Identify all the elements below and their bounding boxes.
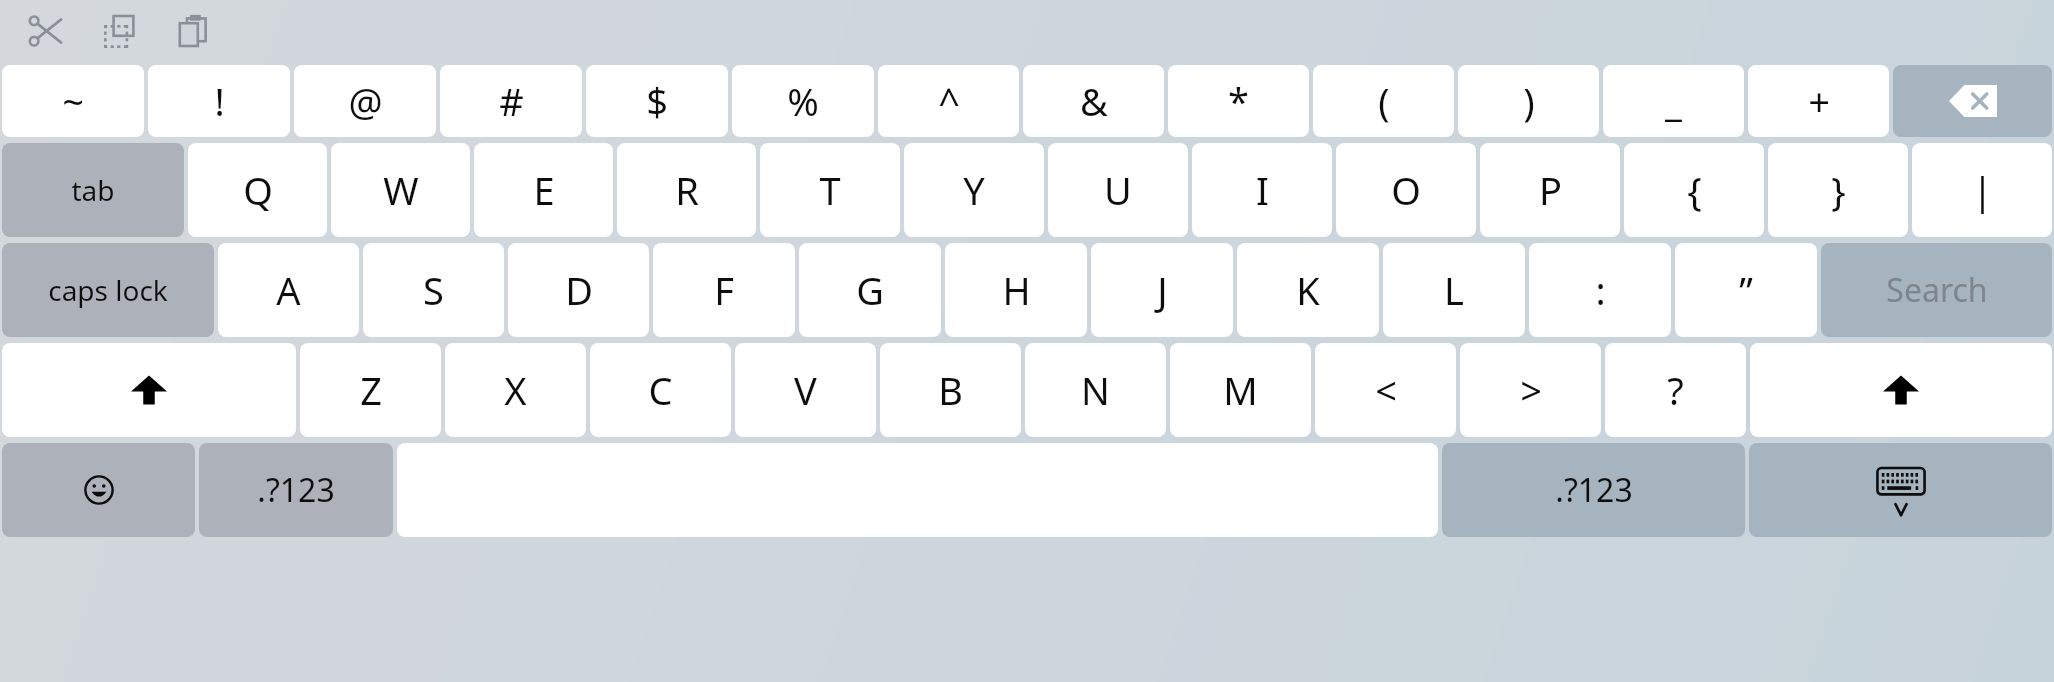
button[interactable]: A — [218, 243, 359, 337]
button[interactable]: R — [617, 143, 756, 237]
button[interactable]: U — [1048, 143, 1188, 237]
staticText: A — [276, 264, 301, 316]
button[interactable]: M — [1170, 343, 1311, 437]
button[interactable]: Z — [300, 343, 441, 437]
staticText: < — [1375, 364, 1397, 416]
button[interactable]: @ — [294, 65, 436, 137]
button[interactable]: ? — [1605, 343, 1746, 437]
staticText: + — [1808, 75, 1830, 127]
button[interactable]: Emoji — [2, 443, 195, 537]
button[interactable]: % — [732, 65, 874, 137]
button[interactable]: C — [590, 343, 731, 437]
staticText: ? — [1667, 364, 1684, 416]
staticText: Q — [243, 164, 273, 216]
staticText: Search — [1886, 268, 1988, 312]
button[interactable]: & — [1023, 65, 1164, 137]
staticText: # — [499, 75, 524, 127]
staticText: tab — [71, 171, 115, 209]
button[interactable]: I — [1192, 143, 1332, 237]
staticText: > — [1520, 364, 1542, 416]
button[interactable]: W — [331, 143, 470, 237]
button[interactable]: tab — [2, 143, 184, 237]
button[interactable]: T — [760, 143, 900, 237]
staticText: X — [504, 364, 527, 416]
staticText: @ — [348, 75, 383, 127]
staticText: ^ — [938, 75, 960, 127]
button[interactable]: ! — [148, 65, 290, 137]
staticText: R — [675, 164, 699, 216]
staticText: .?123 — [1555, 468, 1633, 512]
button[interactable]: * — [1168, 65, 1309, 137]
staticText: ( — [1378, 75, 1390, 127]
button[interactable]: K — [1237, 243, 1379, 337]
button[interactable]: Paste — [164, 6, 222, 56]
button[interactable]: _ — [1603, 65, 1744, 137]
staticText: L — [1444, 264, 1464, 316]
staticText: ” — [1739, 264, 1753, 316]
button[interactable]: O — [1336, 143, 1476, 237]
button[interactable]: ~ — [2, 65, 144, 137]
staticText: J — [1157, 264, 1168, 316]
button[interactable]: Shift — [2, 343, 296, 437]
staticText: D — [565, 264, 593, 316]
staticText: S — [423, 264, 444, 316]
button[interactable]: Hide keyboard — [1749, 443, 2052, 537]
button[interactable]: N — [1025, 343, 1166, 437]
button[interactable]: ( — [1313, 65, 1454, 137]
button[interactable]: H — [945, 243, 1087, 337]
staticText: V — [794, 364, 817, 416]
button[interactable]: : — [1529, 243, 1671, 337]
button[interactable]: E — [474, 143, 613, 237]
button[interactable]: S — [363, 243, 504, 337]
button[interactable]: ) — [1458, 65, 1599, 137]
button[interactable]: ^ — [878, 65, 1019, 137]
staticText: F — [714, 264, 734, 316]
staticText: * — [1228, 75, 1249, 127]
button[interactable]: < — [1315, 343, 1456, 437]
button[interactable]: X — [445, 343, 586, 437]
button[interactable]: # — [440, 65, 582, 137]
staticText: H — [1002, 264, 1031, 316]
button[interactable]: $ — [586, 65, 728, 137]
staticText: I — [1256, 164, 1269, 216]
button[interactable]: Y — [904, 143, 1044, 237]
staticText: ~ — [62, 75, 84, 127]
staticText: C — [648, 364, 673, 416]
staticText: N — [1081, 364, 1110, 416]
button[interactable]: Cut — [16, 6, 74, 56]
staticText: B — [938, 364, 963, 416]
staticText: U — [1104, 164, 1132, 216]
staticText: .?123 — [257, 468, 335, 512]
button[interactable]: ” — [1675, 243, 1817, 337]
button[interactable]: J — [1091, 243, 1233, 337]
button[interactable]: | — [1912, 143, 2052, 237]
staticText: % — [787, 75, 819, 127]
staticText: P — [1539, 164, 1562, 216]
button[interactable]: caps lock — [2, 243, 214, 337]
staticText: | — [1972, 164, 1993, 216]
button[interactable]: F — [653, 243, 795, 337]
staticText: O — [1391, 164, 1421, 216]
button[interactable]: { — [1624, 143, 1764, 237]
staticText: G — [856, 264, 884, 316]
button[interactable]: B — [880, 343, 1021, 437]
staticText: } — [1831, 164, 1846, 216]
button[interactable]: Copy — [90, 6, 148, 56]
button[interactable]: > — [1460, 343, 1601, 437]
button[interactable]: G — [799, 243, 941, 337]
button[interactable]: .?123 — [199, 443, 393, 537]
button[interactable]: Backspace — [1893, 65, 2052, 137]
button[interactable]: P — [1480, 143, 1620, 237]
button[interactable]: Search — [1821, 243, 2052, 337]
button[interactable]: .?123 — [1442, 443, 1745, 537]
button[interactable]: D — [508, 243, 649, 337]
button[interactable]: } — [1768, 143, 1908, 237]
button[interactable]: Shift — [1750, 343, 2052, 437]
staticText: { — [1687, 164, 1702, 216]
button[interactable]: Q — [188, 143, 327, 237]
button[interactable]: + — [1748, 65, 1889, 137]
button[interactable]: L — [1383, 243, 1525, 337]
staticText: ! — [214, 75, 225, 127]
button[interactable]: V — [735, 343, 876, 437]
